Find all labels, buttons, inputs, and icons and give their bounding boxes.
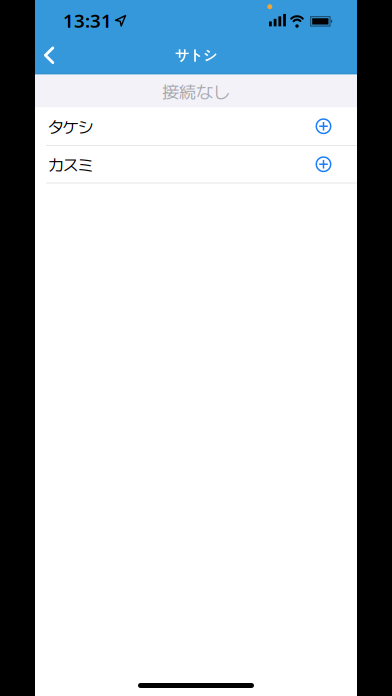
- staticText: サトシ: [175, 46, 217, 64]
- staticText: カスミ: [48, 153, 94, 176]
- button[interactable]: カスミ: [35, 146, 357, 182]
- button[interactable]: タケシ: [35, 107, 357, 145]
- staticText: 接続なし: [162, 78, 230, 104]
- button[interactable]: [35, 46, 70, 64]
- staticText: 13:31: [63, 8, 112, 33]
- staticText: タケシ: [48, 115, 94, 138]
